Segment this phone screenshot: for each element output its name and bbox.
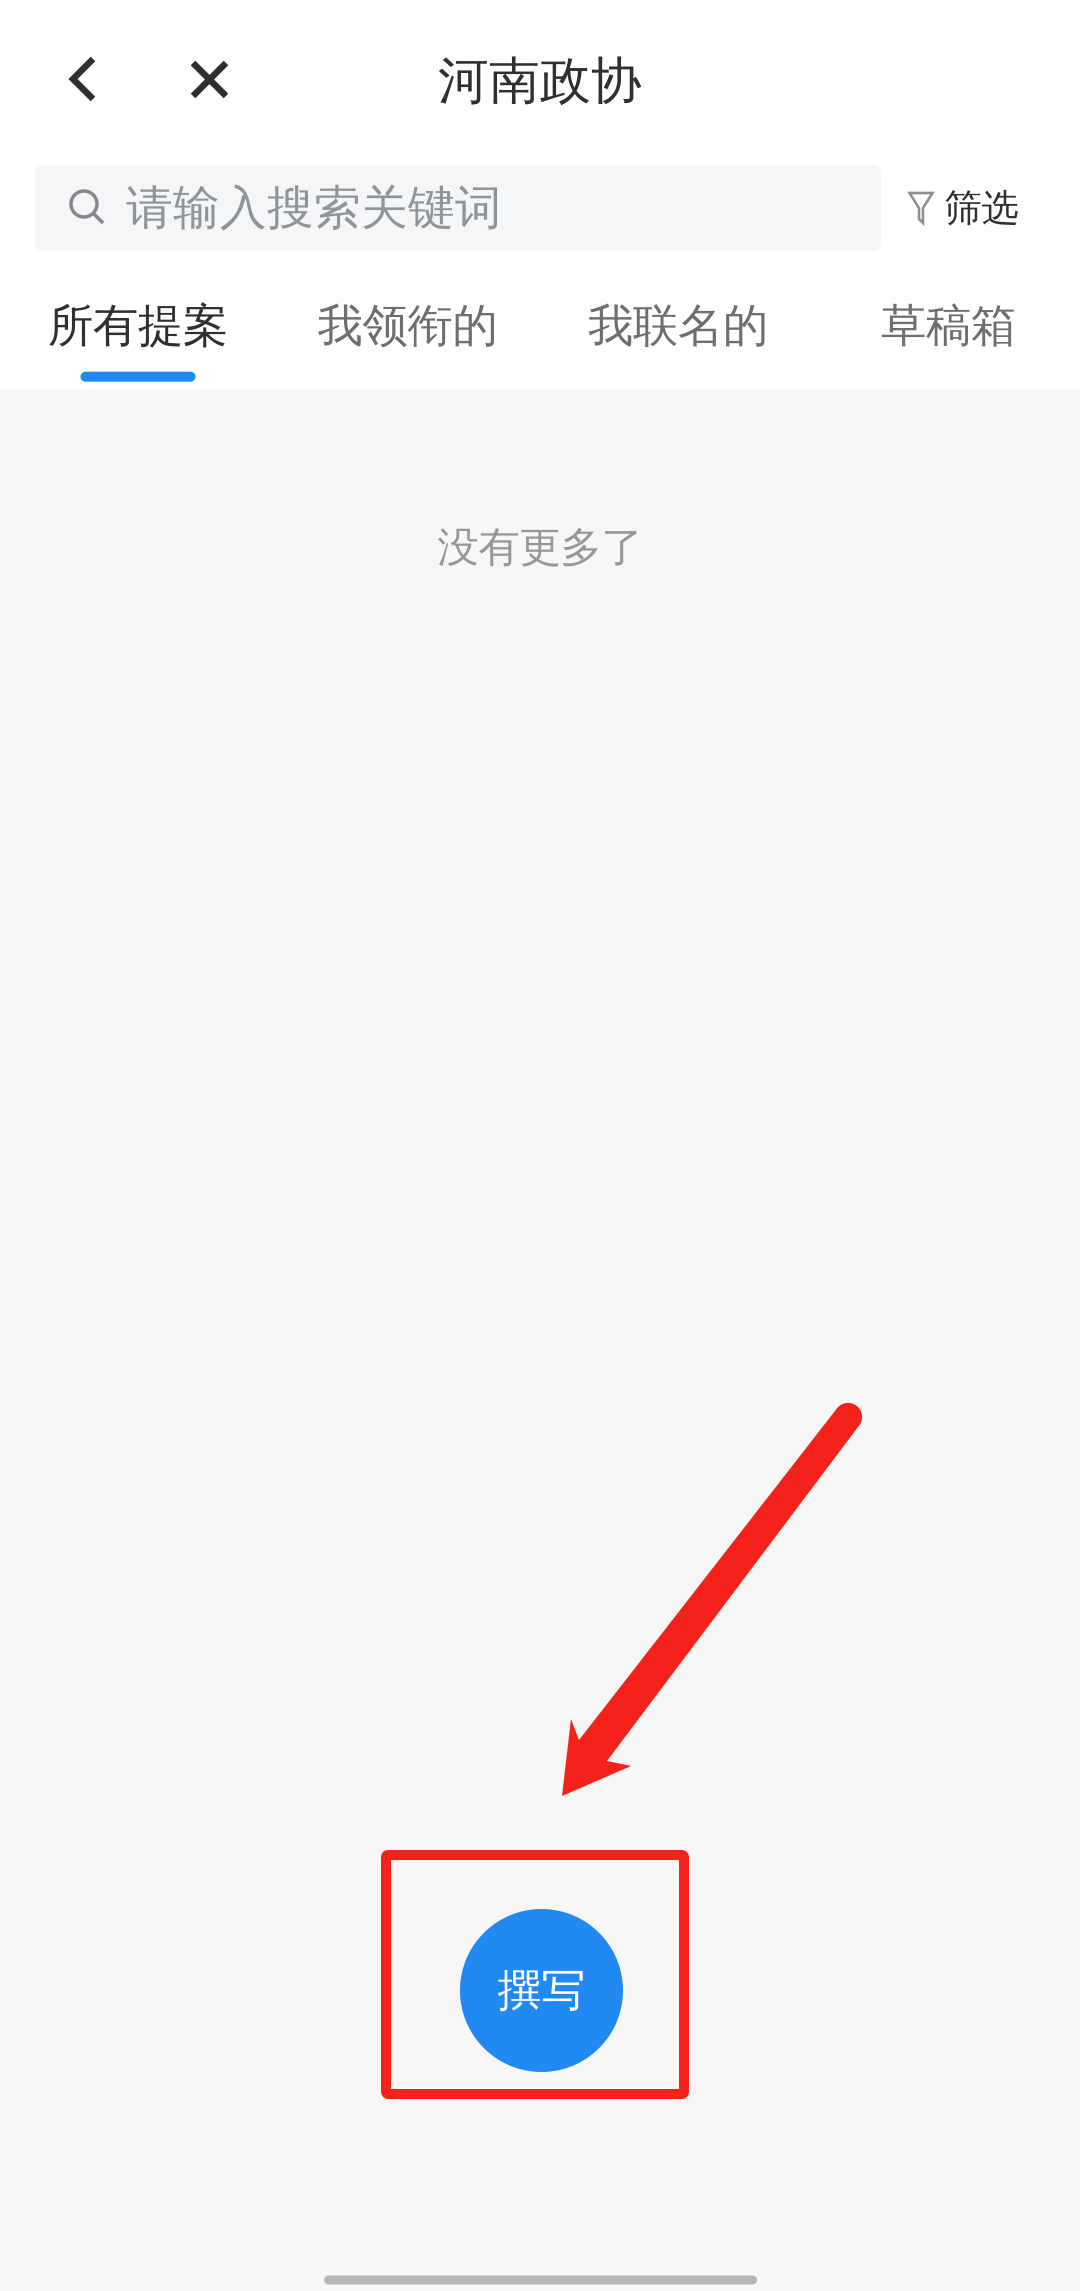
button[interactable]: 所有提案 xyxy=(0,264,276,390)
button[interactable]: 撰写 xyxy=(460,1909,623,2072)
button[interactable]: 我联名的 xyxy=(539,264,817,390)
staticText: 请输入搜索关键词 xyxy=(126,179,502,237)
staticText: 筛选 xyxy=(944,185,1018,231)
staticText: 撰写 xyxy=(497,1963,585,2017)
button[interactable]: Search xyxy=(35,165,881,251)
staticText: 我联名的 xyxy=(588,298,768,354)
staticText: 没有更多了 xyxy=(437,522,642,573)
button[interactable]: Close xyxy=(137,0,282,152)
staticText: 所有提案 xyxy=(48,298,228,354)
button[interactable]: 我领衔的 xyxy=(276,264,539,390)
button[interactable]: 草稿箱 xyxy=(817,264,1080,390)
staticText: 我领衔的 xyxy=(317,298,497,354)
staticText: 草稿箱 xyxy=(881,298,1016,354)
button[interactable]: Back xyxy=(29,0,137,152)
staticText: 河南政协 xyxy=(438,50,642,112)
button[interactable]: 筛选 xyxy=(898,165,1028,250)
